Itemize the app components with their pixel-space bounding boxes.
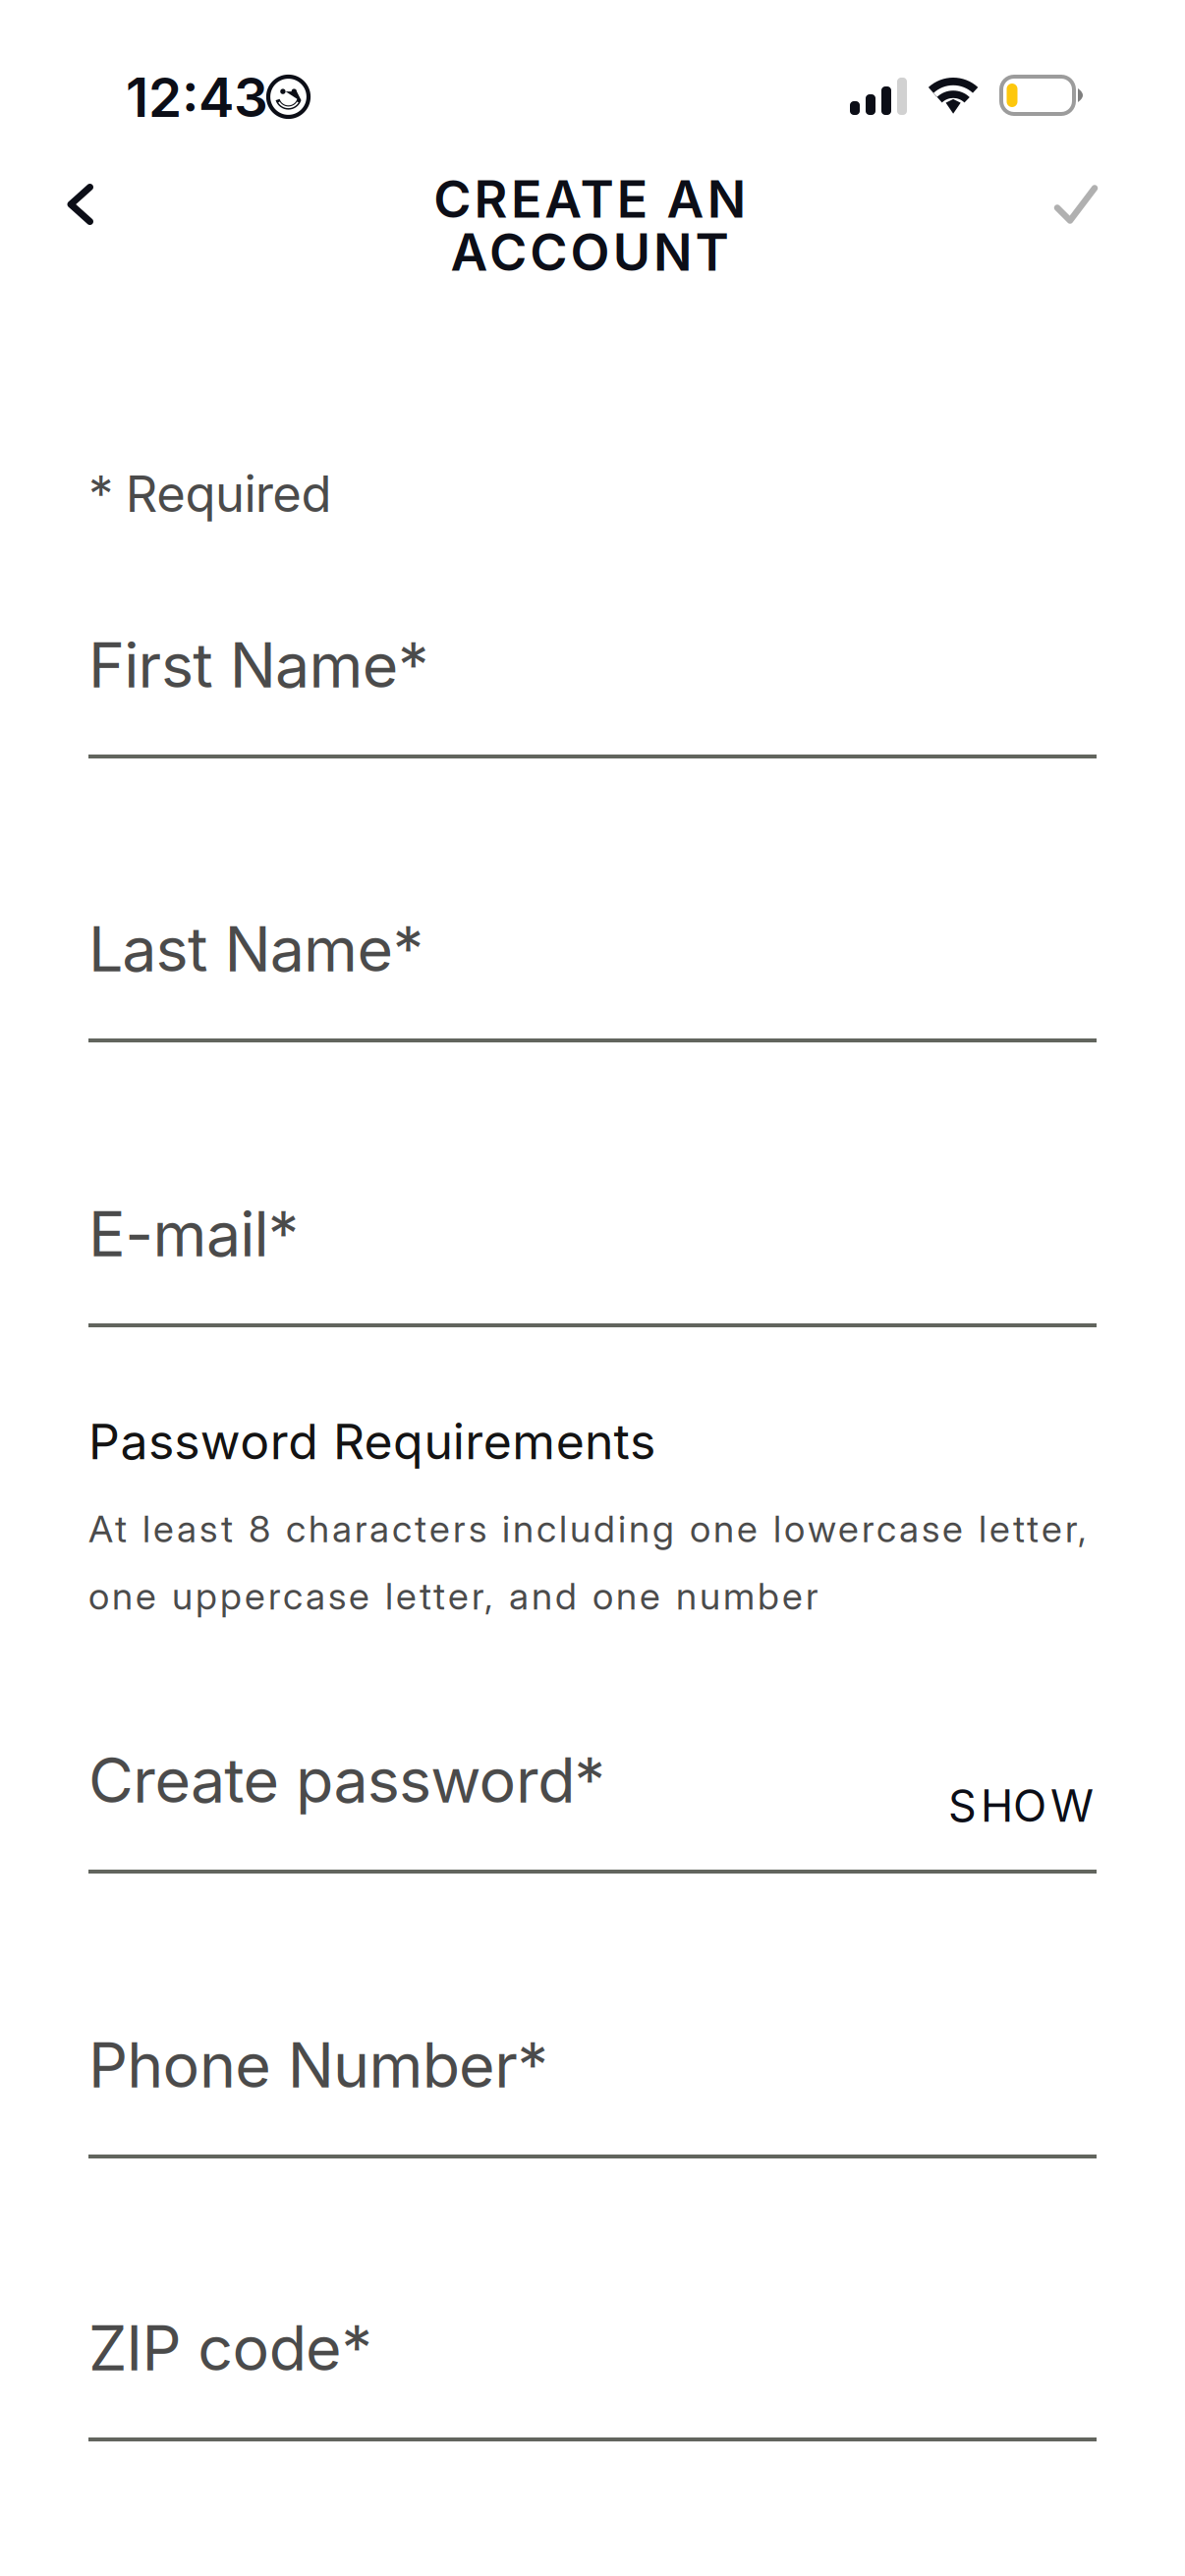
- button[interactable]: S HO W: [887, 1768, 1094, 1843]
- staticText: S HO W: [948, 1779, 1094, 1832]
- staticText: Password Requirements: [88, 1412, 655, 1471]
- button[interactable]: Back: [20, 140, 141, 269]
- staticText: CREATE AN: [434, 168, 745, 230]
- staticText: Last Name*: [88, 912, 423, 986]
- staticText: 12:43: [126, 65, 268, 130]
- staticText: At least 8 characters including one lowe…: [88, 1506, 1087, 1619]
- button[interactable]: Save: [1015, 140, 1137, 269]
- staticText: First Name*: [88, 628, 428, 702]
- staticText: E-mail*: [88, 1197, 299, 1271]
- staticText: * Required: [88, 464, 332, 524]
- staticText: ACCOUNT: [451, 221, 728, 283]
- staticText: Phone Number*: [88, 2028, 548, 2102]
- staticText: ZIP code*: [88, 2311, 372, 2385]
- staticText: Create password*: [88, 1743, 605, 1817]
